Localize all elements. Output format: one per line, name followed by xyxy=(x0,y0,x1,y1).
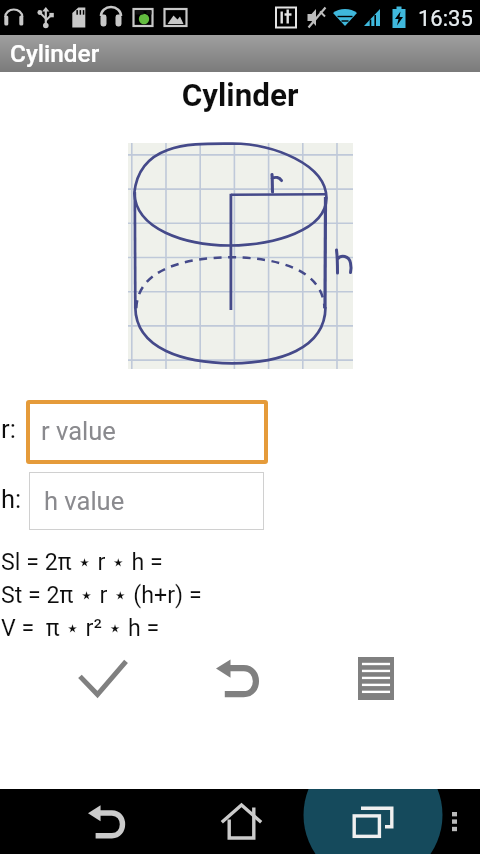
button[interactable]: Home xyxy=(206,789,276,854)
staticText: Cylinder xyxy=(10,39,100,68)
staticText: Sl = 2π ⋆ r ⋆ h = xyxy=(1,548,163,575)
button[interactable]: Cylinder xyxy=(0,35,480,72)
button[interactable]: More options xyxy=(434,789,474,854)
staticText: h: xyxy=(1,484,22,514)
staticText: h value xyxy=(44,486,125,516)
button[interactable]: r value xyxy=(26,400,268,464)
button[interactable]: Back xyxy=(72,789,142,854)
button[interactable]: History xyxy=(341,650,411,706)
staticText: St = 2π ⋆ r ⋆ (h+r) = xyxy=(1,581,202,608)
button[interactable]: h value xyxy=(29,472,264,530)
button[interactable]: Recent apps xyxy=(338,789,408,854)
button[interactable]: Reset xyxy=(203,650,273,706)
staticText: Cylinder xyxy=(0,77,480,114)
staticText: V = π ⋆ r² ⋆ h = xyxy=(1,614,160,641)
button[interactable]: Calculate xyxy=(68,650,138,706)
staticText: 16:35 xyxy=(418,6,473,32)
staticText: r: xyxy=(1,414,16,444)
staticText: r value xyxy=(41,416,116,446)
